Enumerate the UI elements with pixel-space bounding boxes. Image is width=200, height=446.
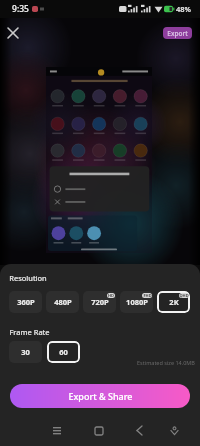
- staticText: QHD: [179, 293, 189, 298]
- staticText: 720P: [91, 297, 109, 307]
- staticText: Resolution: [9, 273, 47, 283]
- button[interactable]: 360P: [9, 291, 42, 313]
- button[interactable]: 720P: [83, 291, 116, 313]
- button[interactable]: Recents: [42, 415, 71, 446]
- button[interactable]: 60: [47, 341, 80, 363]
- staticText: Export: [167, 29, 188, 38]
- button[interactable]: 480P: [46, 291, 79, 313]
- staticText: FHD: [143, 293, 152, 298]
- button[interactable]: Home: [84, 415, 113, 446]
- button[interactable]: Screenshot: [160, 415, 189, 446]
- staticText: Frame Rate: [9, 327, 50, 337]
- button[interactable]: 30: [9, 341, 42, 363]
- staticText: Export & Share: [68, 390, 133, 402]
- staticText: 60: [59, 347, 68, 357]
- staticText: HD: [108, 293, 114, 298]
- staticText: 480P: [54, 297, 72, 307]
- button[interactable]: Export: [163, 27, 192, 39]
- button[interactable]: Export & Share: [10, 384, 190, 408]
- button[interactable]: 2K: [157, 291, 190, 313]
- staticText: 2K: [169, 297, 179, 307]
- staticText: Estimated size 14.0MB: [137, 359, 195, 366]
- button[interactable]: Back: [125, 415, 154, 446]
- staticText: 360P: [17, 297, 35, 307]
- staticText: 48%: [176, 4, 191, 14]
- staticText: 9:35: [12, 3, 29, 15]
- button[interactable]: 1080P: [120, 291, 153, 313]
- staticText: 30: [21, 347, 30, 357]
- button[interactable]: Close: [0, 18, 25, 47]
- staticText: 1080P: [126, 297, 148, 307]
